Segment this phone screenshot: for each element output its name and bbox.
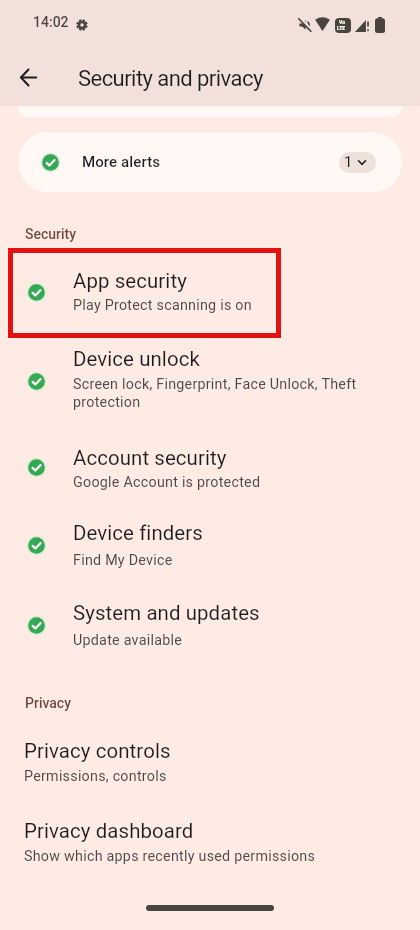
staticText: Permissions, controls — [24, 768, 167, 785]
staticText: Play Protect scanning is on — [73, 297, 252, 314]
staticText: Security and privacy — [78, 66, 263, 92]
button[interactable] — [0, 338, 420, 418]
staticText: Device finders — [73, 521, 203, 545]
button[interactable] — [0, 590, 420, 660]
staticText: Vo — [339, 19, 345, 25]
staticText: Google Account is protected — [73, 474, 261, 491]
staticText: Privacy — [25, 695, 72, 711]
staticText: Privacy controls — [24, 739, 171, 763]
staticText: Privacy dashboard — [24, 819, 194, 843]
button[interactable] — [0, 256, 420, 332]
staticText: Find My Device — [73, 552, 173, 569]
staticText: Screen lock, Fingerprint, Face Unlock, T… — [73, 376, 357, 393]
staticText: Security — [25, 226, 77, 242]
button[interactable]: 1 — [339, 152, 376, 173]
staticText: protection — [73, 394, 141, 411]
button[interactable] — [0, 808, 420, 874]
button[interactable] — [0, 510, 420, 580]
staticText: Update available — [73, 632, 183, 649]
staticText: System and updates — [73, 601, 260, 625]
button[interactable]: More alerts — [18, 132, 402, 192]
staticText: More alerts — [82, 153, 161, 171]
button[interactable] — [21, 69, 37, 86]
button[interactable] — [0, 728, 420, 794]
staticText: Device unlock — [73, 347, 200, 371]
staticText: 14:02 — [33, 14, 69, 30]
staticText: 1 — [344, 153, 353, 171]
staticText: App security — [73, 269, 187, 293]
button[interactable] — [0, 436, 420, 500]
staticText: LTE — [337, 25, 346, 31]
staticText: Account security — [73, 446, 227, 470]
staticText: Show which apps recently used permission… — [24, 848, 316, 865]
